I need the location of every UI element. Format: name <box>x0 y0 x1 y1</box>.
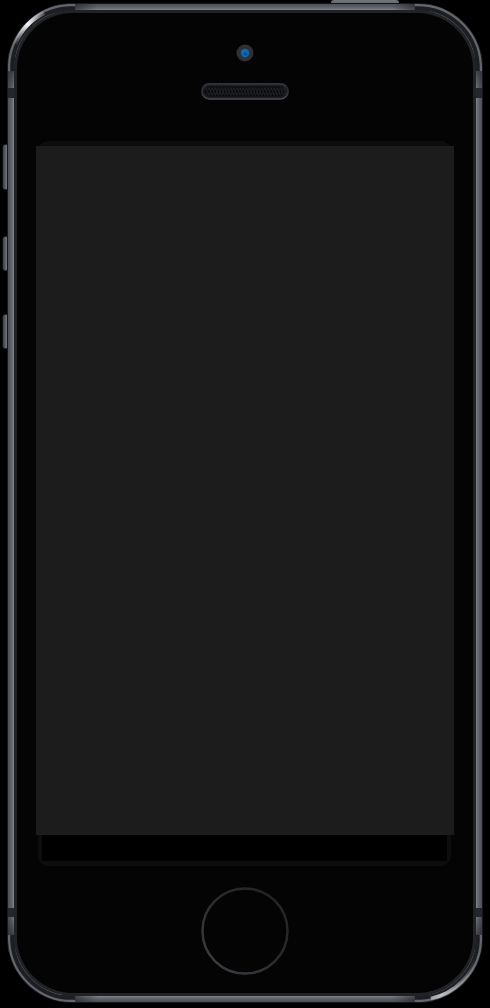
button[interactable]: Volume up <box>1 236 14 271</box>
button[interactable]: Home <box>202 888 288 974</box>
button[interactable]: Ring silent switch <box>1 144 14 190</box>
button[interactable]: Volume down <box>1 314 14 349</box>
button[interactable]: Power <box>331 0 399 11</box>
